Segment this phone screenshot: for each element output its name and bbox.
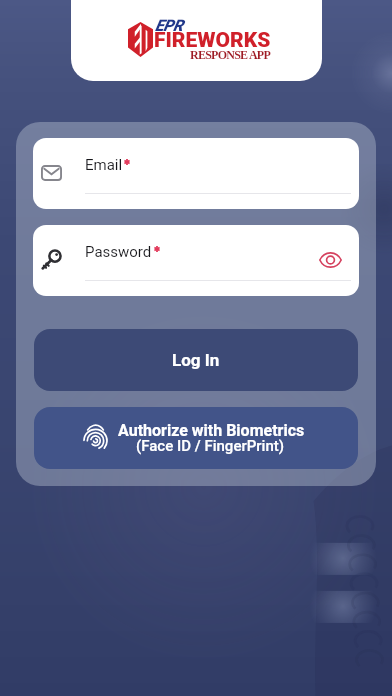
staticText: FIREWORKS	[154, 28, 271, 53]
button[interactable]: Email	[33, 138, 359, 209]
staticText: (Face ID / FingerPrint)	[136, 437, 285, 455]
staticText: Email	[85, 156, 123, 174]
staticText: Password	[85, 243, 152, 261]
staticText: RESPONSE APP	[190, 48, 271, 61]
staticText: EPR	[155, 16, 183, 35]
button[interactable]: Show password	[312, 242, 348, 278]
button[interactable]: Password	[33, 225, 359, 296]
staticText: Authorize with Biometrics	[118, 421, 305, 440]
staticText: Log In	[172, 350, 220, 370]
button[interactable]: Log In	[34, 329, 358, 391]
button[interactable]: Authorize with Biometrics	[34, 407, 358, 469]
